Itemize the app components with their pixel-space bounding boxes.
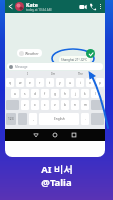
- staticText: English: [54, 117, 65, 121]
- button[interactable]: 123: [6, 113, 16, 125]
- staticText: m: [84, 103, 87, 107]
- staticText: Shanghai 21°-32°C: [61, 58, 88, 62]
- button[interactable]: q: [6, 78, 14, 87]
- staticText: a: [14, 92, 16, 96]
- staticText: AI 비서: [41, 163, 73, 176]
- button[interactable]: j: [71, 89, 79, 98]
- staticText: y: [59, 81, 61, 85]
- button[interactable]: Home: [51, 131, 59, 139]
- button[interactable]: d: [31, 89, 39, 98]
- staticText: ,: [33, 117, 34, 121]
- button[interactable]: z: [21, 100, 29, 110]
- staticText: b: [64, 103, 66, 107]
- staticText: z: [24, 103, 26, 107]
- staticText: h: [64, 92, 66, 96]
- staticText: @Talia: [41, 176, 72, 189]
- staticText: k: [84, 92, 86, 96]
- button[interactable]: e: [26, 78, 34, 87]
- button[interactable]: n: [71, 100, 79, 110]
- staticText: n: [74, 103, 76, 107]
- staticText: f: [44, 92, 46, 96]
- button[interactable]: Call: [89, 3, 97, 11]
- staticText: today at 10:34 AM: [26, 8, 52, 12]
- button[interactable]: [91, 100, 104, 110]
- staticText: p: [99, 81, 101, 85]
- button[interactable]: i: [76, 78, 84, 87]
- staticText: .: [85, 117, 86, 121]
- staticText: e: [29, 81, 31, 85]
- button[interactable]: h: [61, 89, 69, 98]
- staticText: u: [69, 81, 71, 85]
- staticText: l: [95, 92, 96, 96]
- button[interactable]: f: [41, 89, 49, 98]
- button[interactable]: k: [81, 89, 89, 98]
- button[interactable]: Assistant: [86, 49, 95, 58]
- staticText: I'm: [51, 72, 56, 76]
- button[interactable]: g: [51, 89, 59, 98]
- staticText: t: [49, 81, 51, 85]
- button[interactable]: r: [36, 78, 44, 87]
- staticText: v: [54, 103, 56, 107]
- button[interactable]: More options: [98, 4, 103, 9]
- button[interactable]: ,: [29, 113, 37, 125]
- button[interactable]: Recent apps: [70, 131, 78, 139]
- staticText: g: [54, 92, 56, 96]
- button[interactable]: b: [61, 100, 69, 110]
- staticText: c: [44, 103, 46, 107]
- button[interactable]: English: [39, 113, 79, 125]
- staticText: r: [39, 81, 41, 85]
- button[interactable]: p: [96, 78, 104, 87]
- button[interactable]: u: [66, 78, 74, 87]
- staticText: i: [80, 81, 81, 85]
- staticText: x: [34, 103, 36, 107]
- button[interactable]: y: [56, 78, 64, 87]
- button[interactable]: Video call: [79, 3, 87, 11]
- staticText: I: [27, 72, 28, 76]
- staticText: s: [24, 92, 26, 96]
- button[interactable]: c: [41, 100, 49, 110]
- button[interactable]: m: [81, 100, 89, 110]
- button[interactable]: Back: [32, 131, 40, 139]
- staticText: Weather: [25, 51, 39, 56]
- button[interactable]: x: [31, 100, 39, 110]
- button[interactable]: l: [91, 89, 99, 98]
- staticText: w: [19, 81, 22, 85]
- button[interactable]: v: [51, 100, 59, 110]
- button[interactable]: o: [86, 78, 94, 87]
- staticText: j: [75, 92, 76, 96]
- button[interactable]: Back: [7, 3, 14, 10]
- button[interactable]: w: [16, 78, 24, 87]
- button[interactable]: a: [11, 89, 19, 98]
- button[interactable]: [91, 113, 104, 125]
- staticText: o: [89, 81, 91, 85]
- staticText: The: [78, 72, 83, 76]
- button[interactable]: s: [21, 89, 29, 98]
- staticText: q: [9, 81, 11, 85]
- button[interactable]: t: [46, 78, 54, 87]
- staticText: d: [34, 92, 36, 96]
- staticText: 123: [8, 117, 14, 121]
- staticText: Kate: [26, 1, 38, 8]
- staticText: Message: [15, 65, 28, 69]
